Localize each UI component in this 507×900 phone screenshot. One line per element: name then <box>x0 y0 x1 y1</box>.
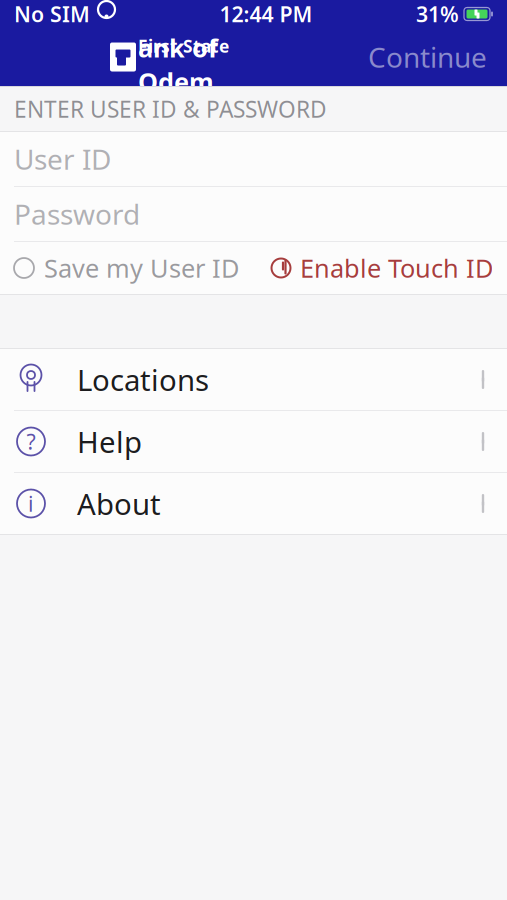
button[interactable]: Enable Touch ID <box>270 242 507 294</box>
staticText: ank of Odem <box>138 31 218 98</box>
staticText: Help <box>77 422 142 461</box>
staticText: About <box>77 484 161 523</box>
staticText: 31% <box>416 0 459 28</box>
staticText: Save my User ID <box>44 251 239 285</box>
button[interactable]: Continue <box>368 35 507 79</box>
button[interactable]: ? <box>0 411 507 472</box>
staticText: User ID <box>14 140 111 178</box>
button[interactable]: Locations <box>0 349 507 410</box>
button[interactable]: i <box>0 473 507 534</box>
staticText: Locations <box>77 360 209 399</box>
staticText: Continue <box>368 38 487 76</box>
staticText: ENTER USER ID & PASSWORD <box>14 94 327 124</box>
staticText: ? <box>26 427 35 456</box>
staticText: Enable Touch ID <box>300 251 493 285</box>
staticText: 12:44 PM <box>219 0 312 28</box>
staticText: First State <box>138 34 229 57</box>
staticText: Password <box>14 195 140 233</box>
staticText: No SIM <box>14 0 90 28</box>
staticText: i <box>28 489 34 518</box>
button[interactable]: Save my User ID <box>0 242 239 294</box>
